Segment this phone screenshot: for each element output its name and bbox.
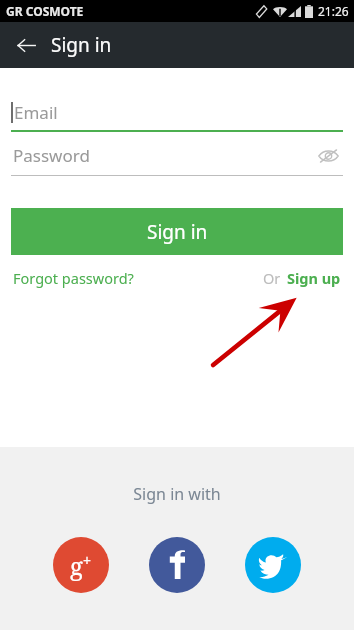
staticText: + — [83, 551, 92, 570]
button[interactable]: Forgot password? — [13, 268, 134, 288]
staticText: Password — [13, 144, 90, 167]
staticText: Forgot password? — [13, 268, 134, 288]
staticText: 21:26 — [318, 3, 349, 19]
staticText: Sign up — [287, 268, 341, 288]
button[interactable]: Sign in with Google — [53, 537, 109, 593]
button[interactable]: Sign in with Twitter — [245, 537, 301, 593]
staticText: Email — [14, 101, 58, 124]
button[interactable]: Sign in with Facebook — [149, 537, 205, 593]
button[interactable]: Sign up — [287, 268, 341, 288]
staticText: Sign in — [51, 32, 112, 58]
staticText: g — [70, 549, 83, 582]
button[interactable]: Back — [13, 32, 39, 58]
button[interactable]: Password — [11, 135, 343, 176]
staticText: GR COSMOTE — [6, 3, 84, 19]
button[interactable]: Sign in — [11, 208, 343, 255]
button[interactable]: Email — [11, 92, 343, 132]
button[interactable]: Show password — [313, 141, 343, 171]
staticText: Or — [263, 268, 281, 288]
staticText: Sign in with — [133, 483, 221, 505]
staticText: Sign in — [147, 219, 208, 245]
